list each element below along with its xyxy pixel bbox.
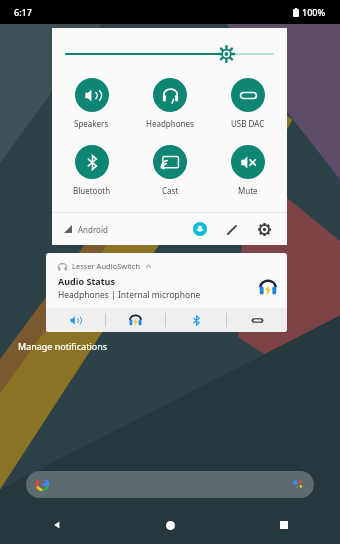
staticText: Speakers: [74, 118, 109, 129]
button[interactable]: Brightness: [66, 46, 273, 62]
staticText: Headphones | Internal microphone: [58, 289, 201, 301]
staticText: Bluetooth: [73, 185, 111, 196]
button[interactable]: Mute: [209, 143, 287, 198]
button[interactable]: Bluetooth: [52, 143, 131, 198]
staticText: Android: [78, 224, 108, 235]
button[interactable]: Back: [0, 512, 114, 538]
staticText: Cast: [162, 185, 179, 196]
button[interactable]: Home: [114, 512, 227, 538]
button[interactable]: USB: [227, 308, 287, 332]
staticText: 6:17: [14, 6, 32, 18]
staticText: USB DAC: [231, 118, 265, 129]
staticText: Audio Status: [58, 275, 115, 287]
button[interactable]: Manage notifications: [18, 340, 108, 352]
button[interactable]: Headphones: [131, 76, 209, 131]
staticText: Headphones: [146, 118, 194, 129]
button[interactable]: [26, 471, 314, 498]
staticText: Lesser AudioSwitch: [72, 261, 141, 271]
button[interactable]: Headphones: [106, 308, 165, 332]
button[interactable]: Bluetooth: [166, 308, 226, 332]
button[interactable]: Edit: [221, 218, 243, 240]
staticText: 100%: [302, 6, 326, 18]
button[interactable]: Speaker: [46, 308, 105, 332]
button[interactable]: Recents: [227, 512, 340, 538]
button[interactable]: Settings: [253, 218, 275, 240]
button[interactable]: User: [189, 218, 211, 240]
button[interactable]: Speakers: [52, 76, 131, 131]
button[interactable]: USB DAC: [209, 76, 287, 131]
staticText: Mute: [238, 185, 258, 196]
button[interactable]: Cast: [131, 143, 209, 198]
